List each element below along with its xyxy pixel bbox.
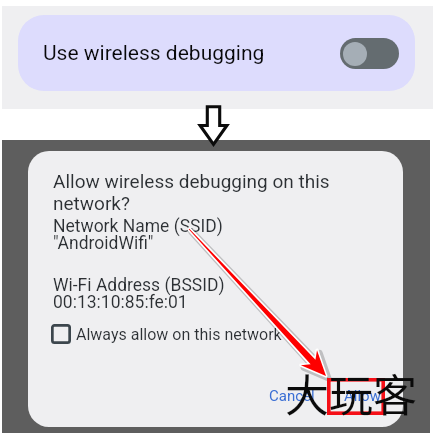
staticText: Use wireless debugging [43,41,265,66]
button[interactable]: Always allow on this network [51,320,282,348]
button[interactable]: Cancel [259,381,325,411]
staticText: Allow wireless debugging on this network… [53,170,353,215]
button[interactable]: Allow [334,381,391,411]
staticText: Always allow on this network [76,325,282,344]
staticText: Network Name (SSID) "AndroidWifi" [53,216,223,253]
button[interactable]: Toggle wireless debugging [340,38,399,69]
staticText: Cancel [269,387,315,405]
button[interactable]: Use wireless debugging [18,15,415,91]
staticText: 大玩客 [285,361,417,425]
staticText: Allow [344,387,381,405]
staticText: Wi-Fi Address (BSSID) 00:13:10:85:fe:01 [53,275,225,312]
